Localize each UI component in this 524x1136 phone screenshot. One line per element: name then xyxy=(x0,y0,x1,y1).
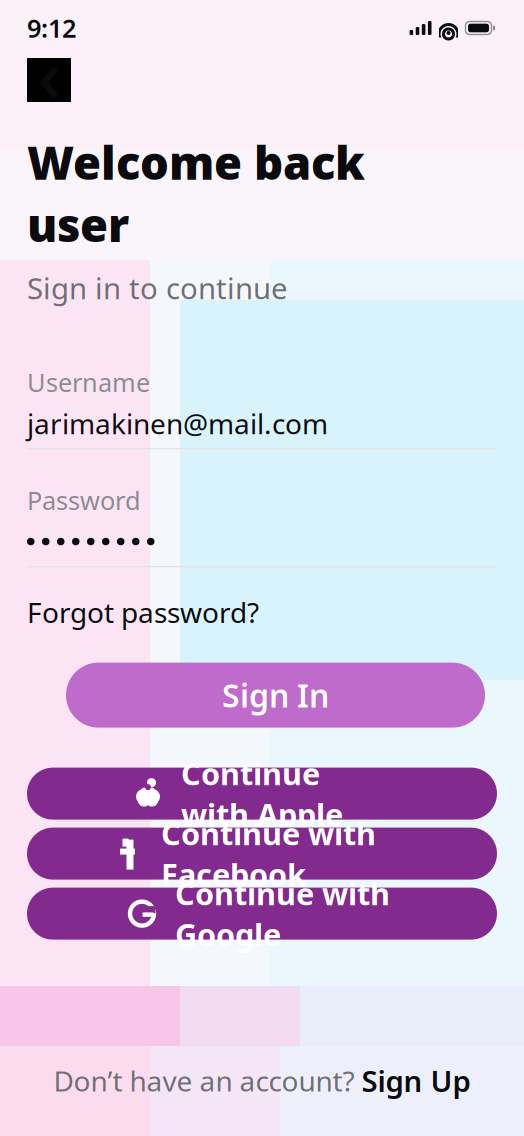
button[interactable]: Back xyxy=(27,58,71,102)
button[interactable]: Sign In xyxy=(66,663,485,728)
staticText: Forgot password? xyxy=(27,593,259,631)
staticText: Sign In xyxy=(222,674,329,716)
staticText: Welcome back xyxy=(27,132,365,192)
staticText: Don’t have an account? xyxy=(53,1062,361,1099)
staticText: Username xyxy=(27,365,150,399)
button[interactable]: Continue with Facebook xyxy=(27,828,497,880)
staticText: Password xyxy=(27,483,141,517)
staticText: Continue with Facebook xyxy=(161,813,376,894)
staticText: 9:12 xyxy=(27,11,76,45)
button[interactable]: Continue with Apple xyxy=(27,768,497,820)
staticText: Continue with Google xyxy=(175,873,390,954)
staticText: Sign Up xyxy=(361,1061,470,1100)
staticText: user xyxy=(27,194,129,254)
staticText: jarimakinen@mail.com xyxy=(27,405,328,442)
button[interactable]: Sign Up xyxy=(361,1061,470,1100)
button[interactable]: Forgot password? xyxy=(27,587,259,637)
staticText: Continue with Apple xyxy=(181,753,343,834)
staticText: ‹ xyxy=(37,26,60,122)
button[interactable]: Continue with Google xyxy=(27,888,497,940)
staticText: Sign in to continue xyxy=(27,268,288,307)
